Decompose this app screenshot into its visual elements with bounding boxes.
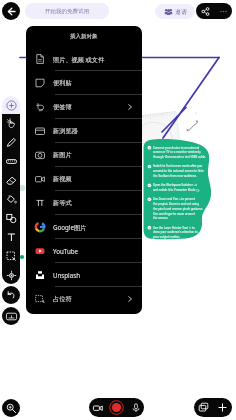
staticText: screen or TV or a monitor wirelessly xyxy=(153,150,211,154)
staticText: 便签簿 xyxy=(53,103,72,111)
staticText: Open the Workspace Switcher ⎇ xyxy=(153,183,211,187)
button[interactable]: YouTube xyxy=(26,239,142,263)
button[interactable]: Frame xyxy=(2,307,20,325)
staticText: through Chromecast or via HDMI cable. xyxy=(153,155,211,159)
button[interactable]: Back xyxy=(2,2,20,20)
staticText: Unsplash xyxy=(53,271,80,279)
button[interactable]: 邀请 xyxy=(155,4,195,19)
button[interactable]: Zoom xyxy=(2,399,20,417)
button[interactable]: 开始我的免费试用 xyxy=(25,3,109,19)
staticText: 便利贴 xyxy=(53,79,72,87)
button[interactable]: Undo xyxy=(2,286,20,304)
button[interactable]: Pages xyxy=(194,398,213,417)
staticText: Switch to Tool screen mode after you xyxy=(153,164,211,168)
staticText: YouTube xyxy=(53,247,79,255)
button[interactable]: Text xyxy=(2,228,20,247)
button[interactable]: 新等式 xyxy=(26,191,142,215)
staticText: 插入新对象 xyxy=(70,33,98,40)
button[interactable]: 新图片 xyxy=(26,143,142,167)
staticText: Use one finger to move around xyxy=(153,212,211,216)
button[interactable]: Eraser xyxy=(2,171,20,190)
staticText: 新视频 xyxy=(53,175,72,183)
staticText: 开始我的免费试用 xyxy=(45,8,89,15)
button[interactable]: More options xyxy=(214,3,232,19)
staticText: the pinch and reverse pinch gestures. xyxy=(153,207,211,211)
button[interactable]: Lasso xyxy=(2,247,20,266)
button[interactable]: 新浏览器 xyxy=(26,119,142,143)
staticText: the Toolbars from now audience. xyxy=(153,174,211,178)
staticText: 新浏览器 xyxy=(53,127,78,135)
button[interactable]: Add tool xyxy=(2,96,20,114)
button[interactable]: Unsplash xyxy=(26,263,142,287)
button[interactable]: 便签簿 xyxy=(26,95,142,119)
button[interactable]: Microphone xyxy=(127,398,144,417)
staticText: Use Zoom and Pan ⌖ to present xyxy=(153,197,211,201)
button[interactable]: 新视频 xyxy=(26,167,142,191)
button[interactable]: Select xyxy=(2,114,20,133)
button[interactable]: 占位符 xyxy=(26,287,142,311)
staticText: draw your audience's attention to xyxy=(153,230,211,234)
staticText: Use the Laser Pointer Tool ☉ to xyxy=(153,226,211,230)
staticText: 新图片 xyxy=(53,151,72,159)
staticText: and switch it to Presenter Mode □. xyxy=(153,188,211,192)
button[interactable]: Pen xyxy=(2,133,20,152)
button[interactable]: Ruler xyxy=(2,152,20,171)
staticText: 照片、视频 或文件 xyxy=(53,55,105,63)
staticText: the canvas. xyxy=(153,216,211,220)
button[interactable]: Fill xyxy=(2,190,20,209)
button[interactable]: Shapes xyxy=(2,209,20,228)
button[interactable]: Camera xyxy=(89,398,106,417)
staticText: Google图片 xyxy=(53,223,87,231)
button[interactable]: Laser xyxy=(2,266,20,284)
staticText: Connect your device to an external xyxy=(153,146,211,150)
staticText: the project. Zoom in and out using xyxy=(153,202,211,206)
button[interactable]: 照片、视频 或文件 xyxy=(26,47,142,71)
staticText: 邀请 xyxy=(175,8,187,16)
button[interactable]: Google图片 xyxy=(26,215,142,239)
button[interactable]: Add page xyxy=(213,398,232,417)
staticText: 占位符 xyxy=(53,295,72,303)
button[interactable]: 便利贴 xyxy=(26,71,142,95)
button[interactable]: Share xyxy=(196,3,214,19)
staticText: connect to the external screen to hide xyxy=(153,169,211,173)
staticText: 新等式 xyxy=(53,199,72,207)
staticText: your subject matter. xyxy=(153,235,211,239)
button[interactable]: Record xyxy=(106,398,127,417)
